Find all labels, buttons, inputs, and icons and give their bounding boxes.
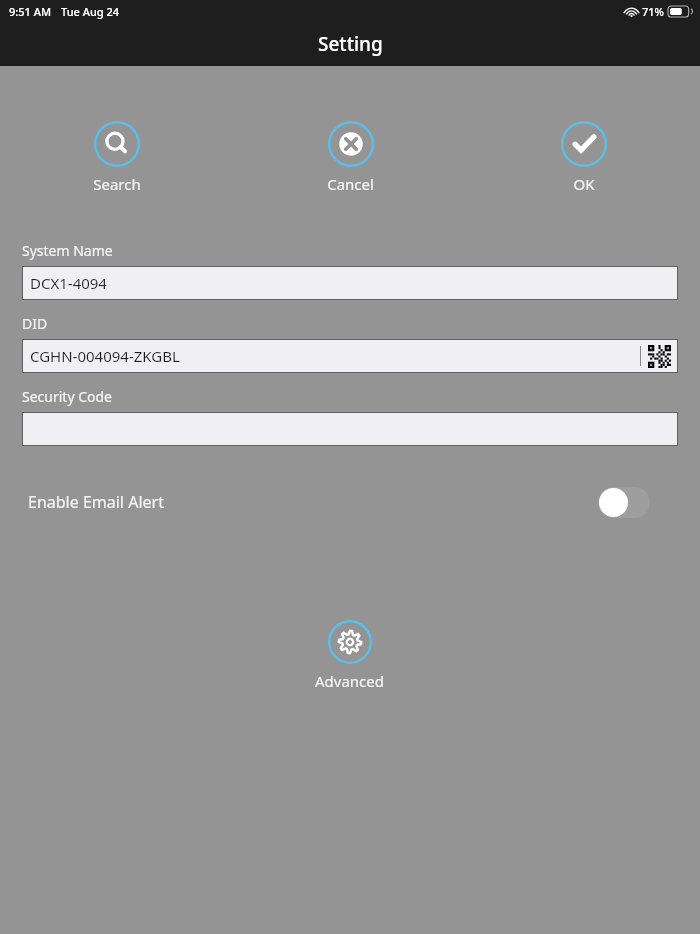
staticText: DID (22, 314, 48, 333)
button[interactable]: Advanced (305, 618, 395, 693)
staticText: Security Code (22, 387, 113, 406)
staticText: OK (573, 174, 595, 194)
button[interactable]: Cancel (317, 119, 384, 196)
staticText: DCX1-4094 (30, 273, 678, 293)
staticText: Tue Aug 24 (61, 4, 120, 19)
staticText: System Name (22, 241, 113, 260)
button[interactable]: Enable Email Alert (0, 482, 700, 522)
staticText: CGHN-004094-ZKGBL (30, 346, 640, 366)
button[interactable]: OK (551, 119, 617, 196)
button[interactable]: CGHN-004094-ZKGBL (22, 339, 678, 373)
staticText: Cancel (327, 174, 374, 194)
staticText: Setting (318, 31, 383, 57)
button[interactable]: Scan QR code (648, 345, 671, 368)
button[interactable]: Enable Email Alert toggle (598, 487, 650, 518)
staticText: Advanced (315, 671, 385, 691)
staticText: Enable Email Alert (28, 491, 164, 513)
staticText (30, 419, 678, 439)
button[interactable] (22, 412, 678, 446)
staticText: 71% (642, 4, 664, 19)
staticText: Search (93, 174, 141, 194)
staticText: 9:51 AM (9, 4, 52, 19)
button[interactable]: DCX1-4094 (22, 266, 678, 300)
button[interactable]: Search (83, 119, 151, 196)
